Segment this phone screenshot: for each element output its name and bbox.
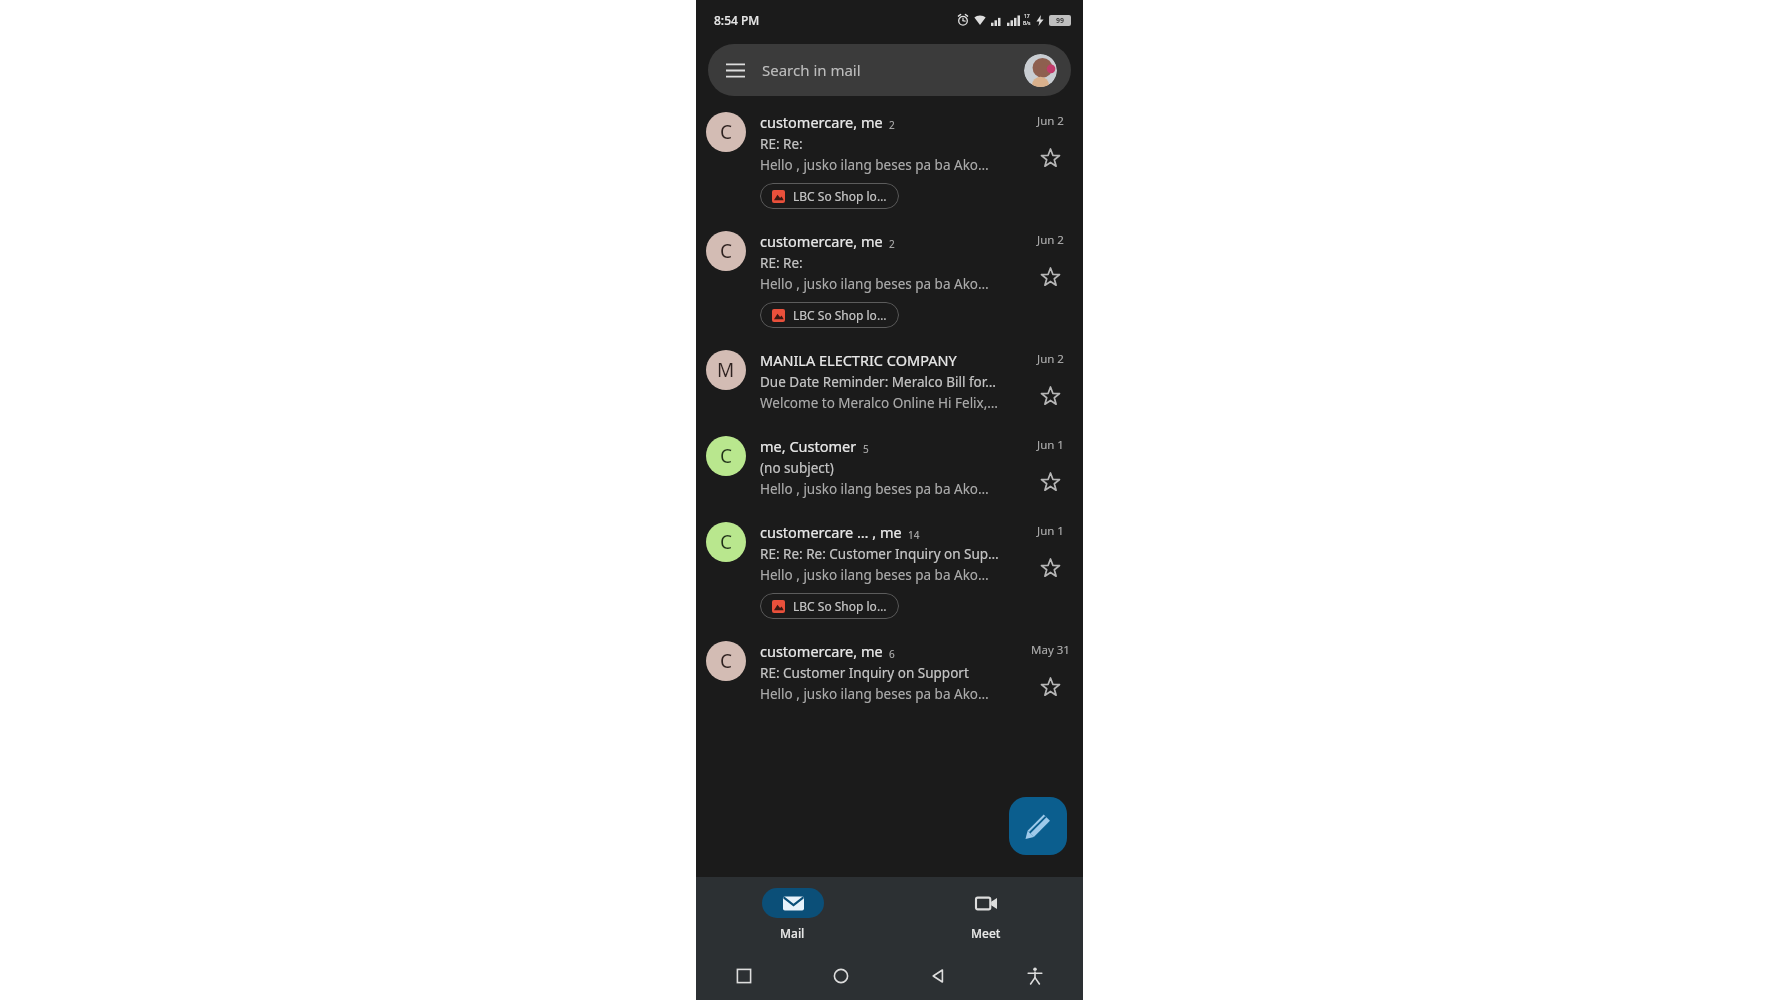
- staticText: (no subject): [760, 459, 834, 477]
- staticText: customercare … , me: [760, 522, 902, 542]
- staticText: RE: Re:: [760, 254, 803, 272]
- staticText: Hello , jusko ilang beses pa ba Ako…: [760, 156, 989, 174]
- button[interactable]: Star: [1035, 143, 1065, 173]
- staticText: Jun 2: [1037, 232, 1064, 248]
- staticText: 2: [889, 118, 895, 132]
- staticText: M: [717, 357, 735, 383]
- staticText: May 31: [1031, 642, 1070, 658]
- button[interactable]: Mail: [696, 877, 889, 952]
- button[interactable]: Meet: [889, 877, 1083, 952]
- button[interactable]: LBC So Shop lo…: [760, 183, 899, 209]
- staticText: 5: [863, 442, 869, 456]
- staticText: C: [720, 443, 733, 469]
- button[interactable]: C: [696, 100, 1083, 219]
- staticText: LBC So Shop lo…: [793, 188, 887, 204]
- staticText: Welcome to Meralco Online Hi Felix,…: [760, 394, 999, 412]
- button[interactable]: C: [696, 424, 1083, 510]
- button[interactable]: Star: [1035, 553, 1065, 583]
- staticText: Hello , jusko ilang beses pa ba Ako…: [760, 480, 989, 498]
- staticText: Jun 2: [1037, 351, 1064, 367]
- button[interactable]: Compose: [1009, 797, 1067, 855]
- button[interactable]: Recent apps: [696, 952, 792, 1000]
- staticText: Jun 2: [1037, 113, 1064, 129]
- staticText: B/s: [1023, 20, 1031, 27]
- staticText: LBC So Shop lo…: [793, 598, 887, 614]
- staticText: Due Date Reminder: Meralco Bill for…: [760, 373, 996, 391]
- button[interactable]: Star: [1035, 672, 1065, 702]
- button[interactable]: C: [696, 629, 1083, 715]
- button[interactable]: Back: [889, 952, 986, 1000]
- button[interactable]: Star: [1035, 381, 1065, 411]
- staticText: 17: [1024, 13, 1030, 20]
- button[interactable]: Home: [792, 952, 889, 1000]
- staticText: customercare, me: [760, 231, 883, 251]
- staticText: Jun 1: [1037, 523, 1064, 539]
- staticText: C: [720, 119, 733, 145]
- staticText: Jun 1: [1037, 437, 1064, 453]
- staticText: Search in mail: [762, 60, 861, 80]
- staticText: C: [720, 238, 733, 264]
- staticText: 2: [889, 237, 895, 251]
- button[interactable]: Star: [1035, 262, 1065, 292]
- staticText: me, Customer: [760, 436, 857, 456]
- staticText: customercare, me: [760, 112, 883, 132]
- staticText: C: [720, 648, 733, 674]
- button[interactable]: M: [696, 338, 1083, 424]
- staticText: Meet: [971, 925, 1001, 941]
- staticText: MANILA ELECTRIC COMPANY: [760, 350, 957, 370]
- staticText: LBC So Shop lo…: [793, 307, 887, 323]
- staticText: C: [720, 529, 733, 555]
- staticText: 6: [889, 647, 895, 661]
- staticText: 99: [1056, 16, 1065, 26]
- button[interactable]: LBC So Shop lo…: [760, 593, 899, 619]
- staticText: RE: Re: Re: Customer Inquiry on Sup…: [760, 545, 999, 563]
- staticText: customercare, me: [760, 641, 883, 661]
- staticText: RE: Re:: [760, 135, 803, 153]
- staticText: Hello , jusko ilang beses pa ba Ako…: [760, 566, 989, 584]
- staticText: Hello , jusko ilang beses pa ba Ako…: [760, 685, 989, 703]
- button[interactable]: Open navigation menu: [708, 44, 1071, 96]
- staticText: RE: Customer Inquiry on Support: [760, 664, 969, 682]
- staticText: Mail: [780, 925, 805, 941]
- button[interactable]: Open navigation menu: [722, 57, 748, 83]
- button[interactable]: LBC So Shop lo…: [760, 302, 899, 328]
- staticText: Hello , jusko ilang beses pa ba Ako…: [760, 275, 989, 293]
- button[interactable]: C: [696, 510, 1083, 629]
- button[interactable]: Star: [1035, 467, 1065, 497]
- button[interactable]: Account: [1024, 54, 1057, 87]
- staticText: 14: [908, 528, 920, 542]
- staticText: 8:54 PM: [714, 12, 760, 28]
- button[interactable]: C: [696, 219, 1083, 338]
- button[interactable]: Accessibility: [986, 952, 1083, 1000]
